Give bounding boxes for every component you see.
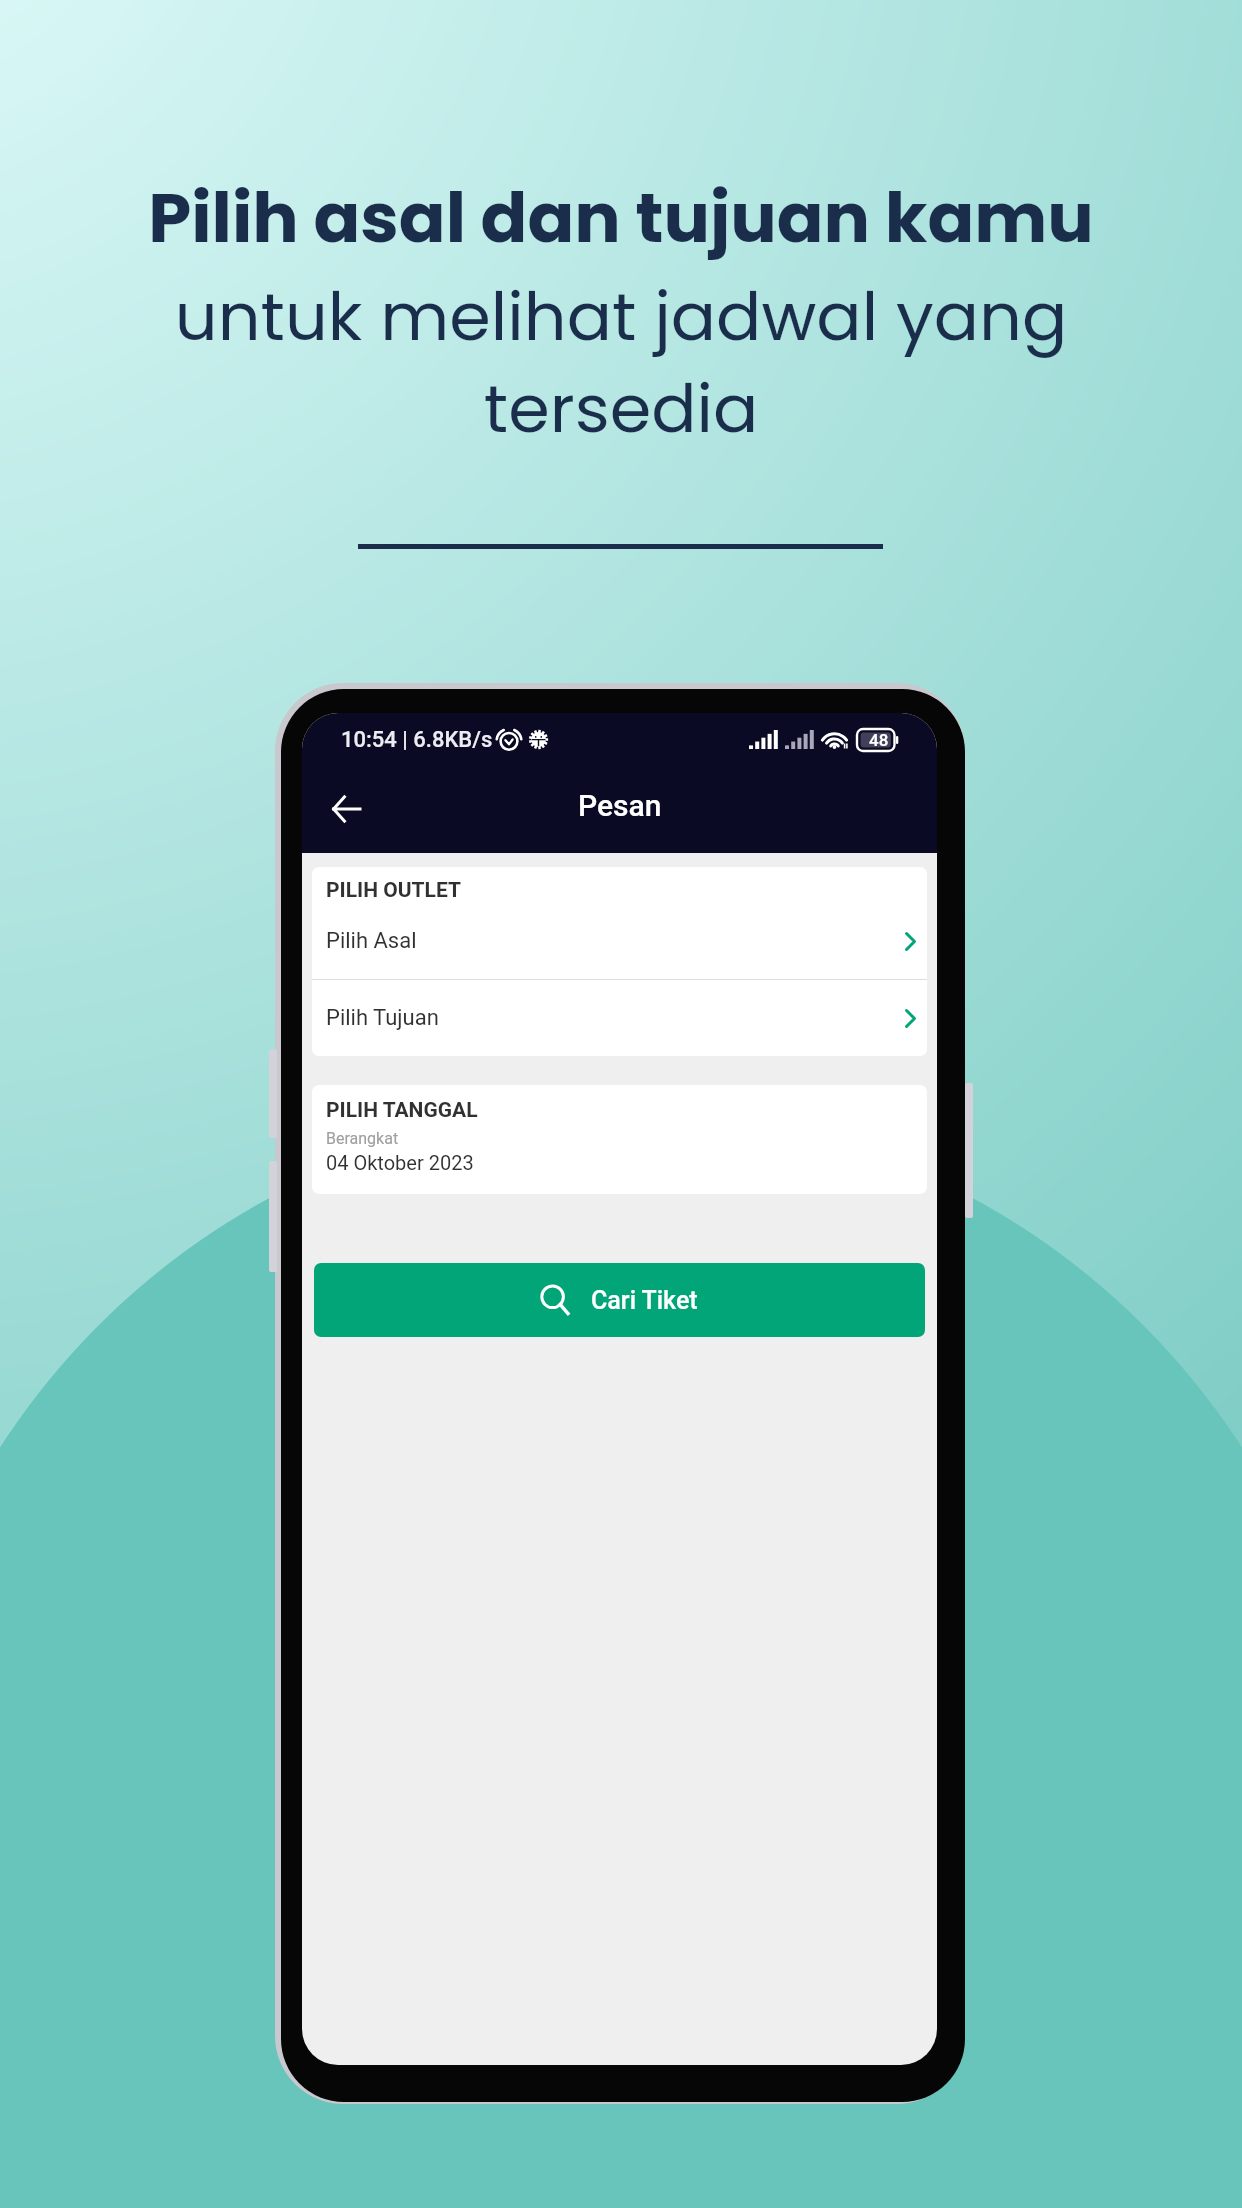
staticText: Cari Tiket — [591, 1286, 698, 1315]
staticText: Pilih Tujuan — [326, 1005, 439, 1031]
staticText: Berangkat — [326, 1129, 399, 1148]
button[interactable]: Pilih Asal — [312, 903, 927, 979]
staticText: PILIH OUTLET — [326, 878, 461, 903]
staticText: untuk melihat jadwal yang tersedia — [150, 270, 1092, 455]
staticText: 48 — [869, 730, 889, 750]
button[interactable]: Cari Tiket — [314, 1263, 925, 1337]
button[interactable]: Pilih Tujuan — [312, 980, 927, 1056]
staticText: 10:54 | 6.8KB/s — [341, 727, 493, 753]
staticText: Pilih Asal — [326, 928, 417, 954]
button[interactable]: Back — [302, 765, 390, 853]
staticText: Pilih asal dan tujuan kamu — [0, 170, 1242, 267]
staticText: PILIH TANGGAL — [326, 1098, 478, 1123]
staticText: 04 Oktober 2023 — [326, 1151, 474, 1174]
staticText: Pesan — [578, 788, 662, 823]
